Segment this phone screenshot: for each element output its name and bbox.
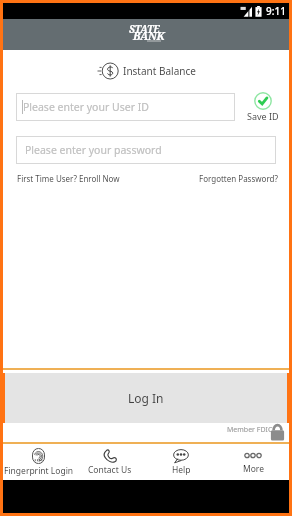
staticText: Please enter your password: [25, 143, 162, 157]
staticText: Fingerprint Login: [4, 465, 74, 477]
staticText: BANK: [133, 28, 165, 43]
staticText: Help: [172, 464, 191, 476]
button[interactable]: Instant Balance: [3, 62, 289, 80]
button[interactable]: Log In: [5, 373, 287, 423]
other: More: [243, 449, 263, 462]
staticText: Log In: [128, 390, 164, 406]
other: Fingerprint Login: [32, 448, 45, 464]
staticText: Please enter your User ID: [23, 100, 149, 114]
staticText: 9:11: [266, 4, 286, 18]
button[interactable]: Help: [145, 444, 217, 480]
button[interactable]: Please enter your password: [16, 136, 276, 164]
button[interactable]: Contact Us: [74, 444, 145, 480]
button[interactable]: More: [217, 444, 289, 480]
other: Help: [173, 449, 189, 463]
button[interactable]: Fingerprint Login: [3, 444, 74, 480]
button[interactable]: Please enter your User ID: [16, 93, 235, 121]
button[interactable]: First Time User? Enroll Now: [17, 173, 120, 184]
staticText: Instant Balance: [123, 64, 196, 78]
staticText: Contact Us: [88, 464, 132, 476]
button[interactable]: Save ID: [243, 92, 283, 122]
button[interactable]: Forgotten Password?: [199, 173, 278, 184]
staticText: Member FDIC: [227, 425, 273, 435]
staticText: More: [243, 463, 264, 475]
other: Instant Balance: [97, 62, 119, 80]
staticText: STATE: [129, 22, 160, 36]
other: Secure: [270, 423, 285, 441]
staticText: Save ID: [247, 110, 279, 122]
